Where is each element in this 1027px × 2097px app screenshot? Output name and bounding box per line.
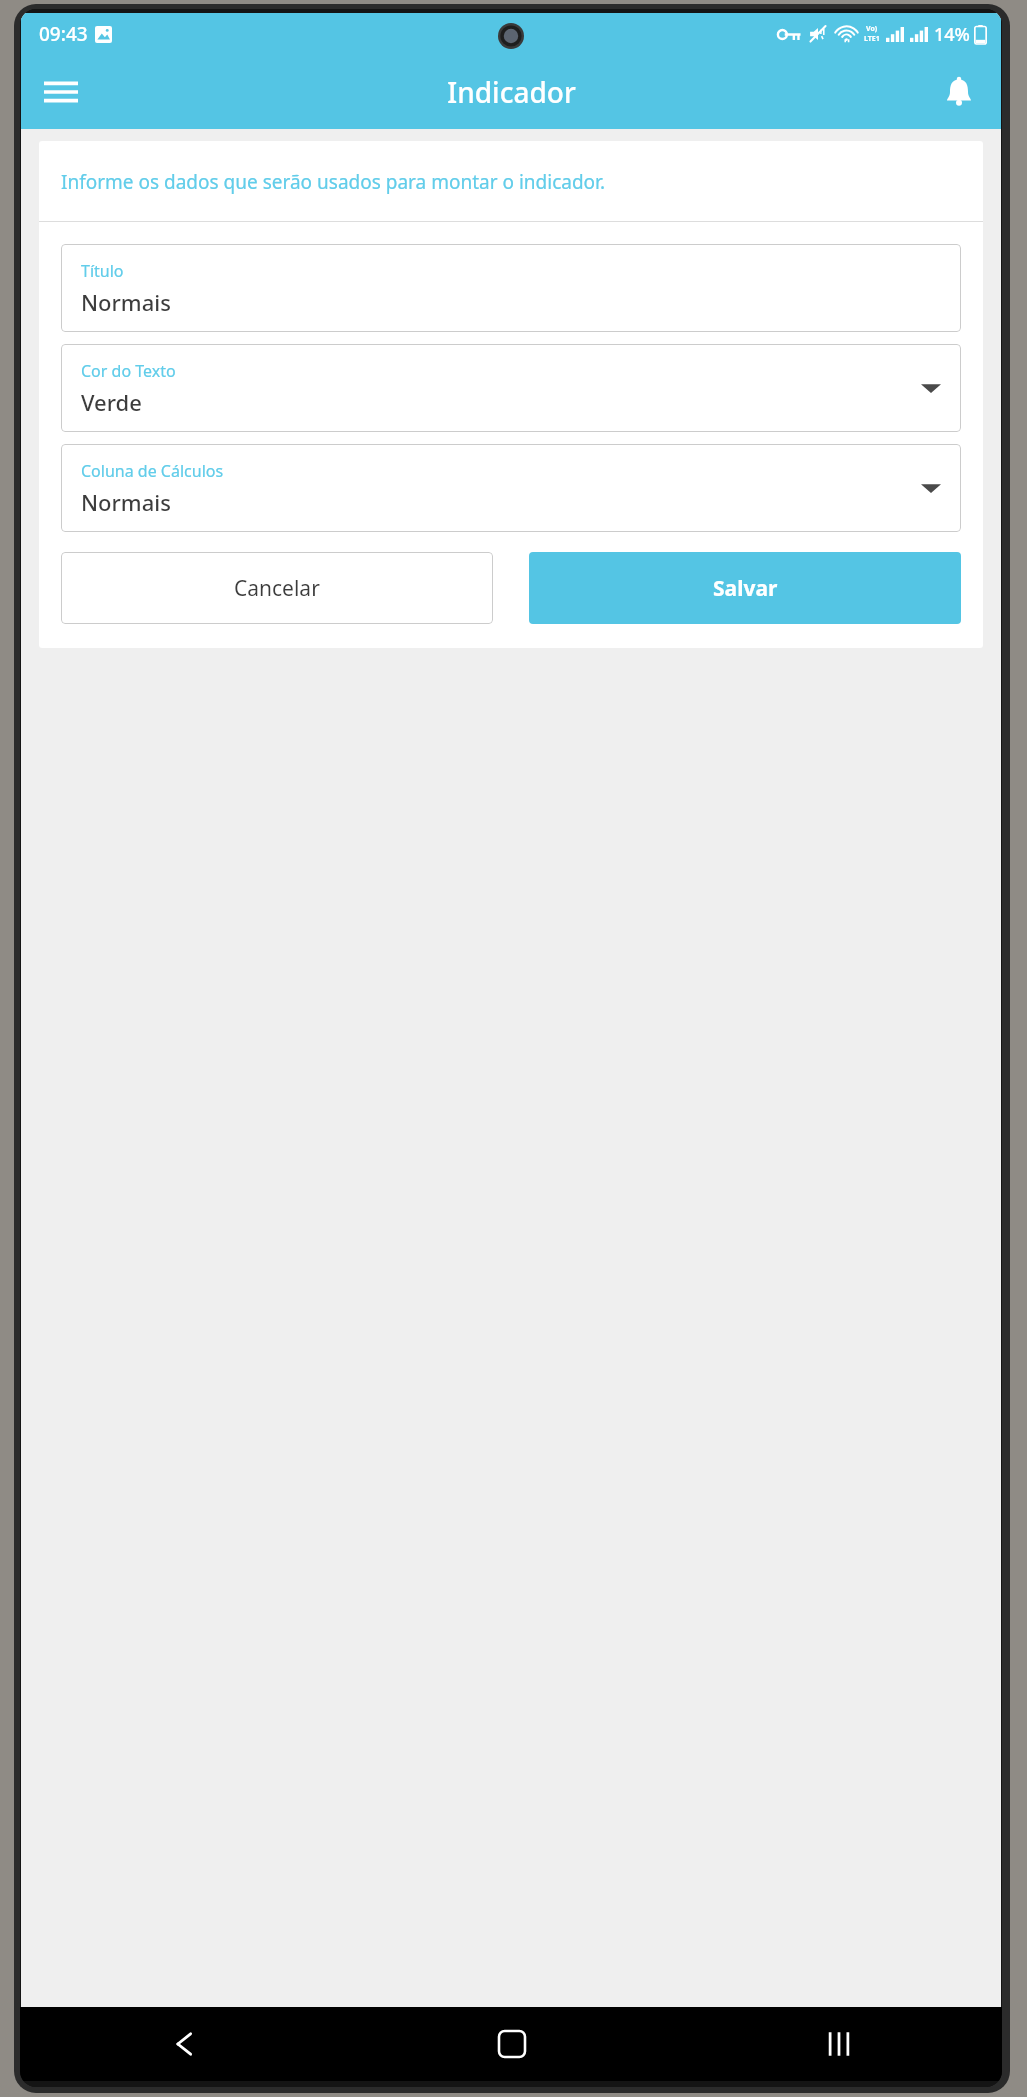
button[interactable]: Notifications: [931, 64, 987, 120]
staticText: Verde: [81, 387, 142, 417]
button[interactable]: Título: [61, 244, 961, 332]
staticText: Salvar: [713, 574, 778, 603]
button[interactable]: Cor do Texto: [61, 344, 961, 432]
staticText: Vo): [866, 24, 878, 34]
staticText: 09:43: [39, 21, 88, 47]
staticText: Coluna de Cálculos: [81, 460, 224, 482]
staticText: Normais: [81, 287, 171, 317]
staticText: 14%: [934, 22, 970, 47]
staticText: Indicador: [447, 73, 576, 111]
staticText: Título: [81, 260, 124, 282]
staticText: LTE1: [864, 34, 880, 44]
button[interactable]: Recent apps: [675, 2007, 1002, 2081]
staticText: Cor do Texto: [81, 360, 176, 382]
button[interactable]: Cancelar: [61, 552, 493, 624]
button[interactable]: Coluna de Cálculos: [61, 444, 961, 532]
button[interactable]: Back: [20, 2007, 348, 2081]
staticText: Informe os dados que serão usados para m…: [61, 169, 606, 195]
button[interactable]: Salvar: [529, 552, 961, 624]
staticText: Normais: [81, 487, 171, 517]
staticText: Cancelar: [234, 574, 320, 603]
button[interactable]: Home: [348, 2007, 675, 2081]
button[interactable]: Open navigation menu: [33, 64, 89, 120]
